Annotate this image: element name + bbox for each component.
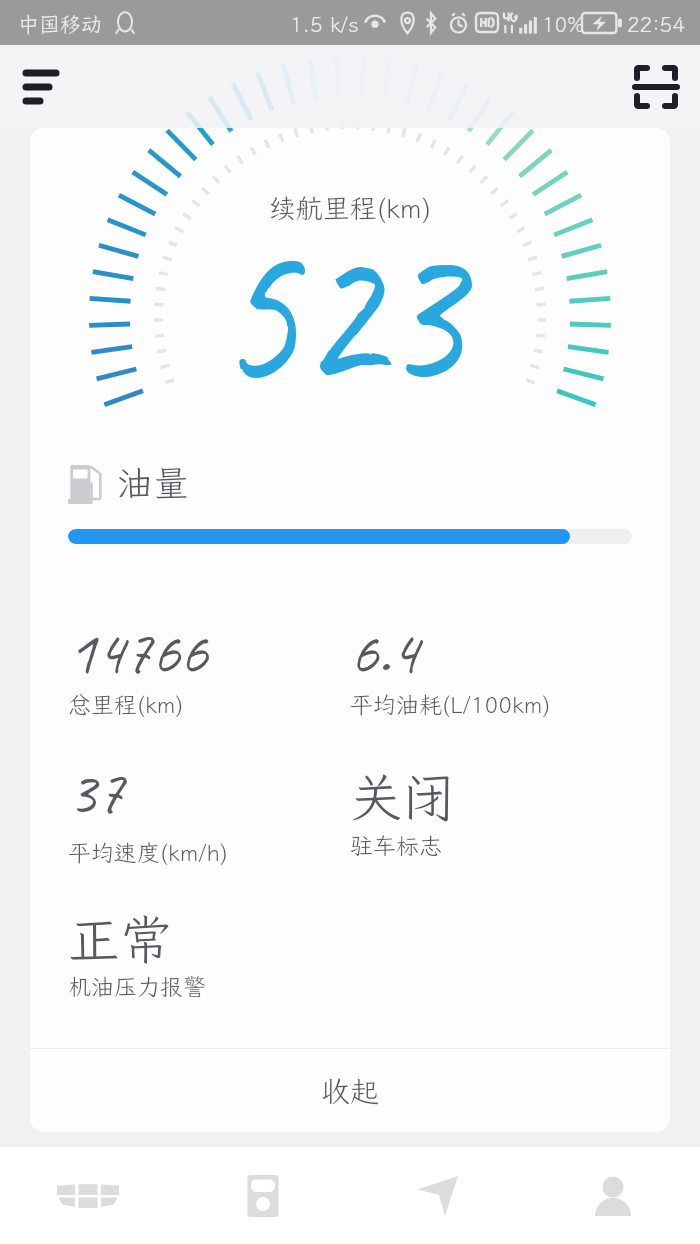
staticText: 收起 bbox=[321, 1072, 380, 1110]
staticText: 正常 bbox=[68, 904, 173, 972]
button[interactable]: 收起 bbox=[30, 1049, 670, 1132]
staticText: 1.5 k/s bbox=[290, 10, 359, 38]
staticText: 总里程(km) bbox=[68, 689, 184, 719]
button[interactable]: Remote bbox=[175, 1147, 350, 1244]
staticText: 驻车标志 bbox=[350, 830, 442, 860]
button[interactable]: Navigation bbox=[350, 1147, 525, 1244]
button[interactable]: Menu bbox=[10, 53, 78, 121]
staticText: 22:54 bbox=[627, 10, 685, 38]
staticText: 平均速度(km/h) bbox=[68, 837, 229, 867]
staticText: 523 bbox=[27, 175, 650, 443]
staticText: 关闭 bbox=[350, 762, 455, 830]
staticText: 37 bbox=[68, 753, 124, 831]
staticText: 中国移动 bbox=[18, 10, 102, 38]
staticText: 6.4 bbox=[350, 613, 419, 691]
staticText: 机油压力报警 bbox=[68, 971, 206, 1001]
staticText: 油量 bbox=[117, 459, 190, 506]
button[interactable]: Scan bbox=[622, 53, 690, 121]
button[interactable]: Vehicle bbox=[0, 1147, 175, 1244]
button[interactable]: Profile bbox=[525, 1147, 700, 1244]
staticText: 续航里程(km) bbox=[0, 190, 700, 226]
staticText: 10% bbox=[542, 10, 584, 38]
staticText: 平均油耗(L/100km) bbox=[350, 689, 551, 719]
staticText: 14766 bbox=[68, 613, 208, 691]
